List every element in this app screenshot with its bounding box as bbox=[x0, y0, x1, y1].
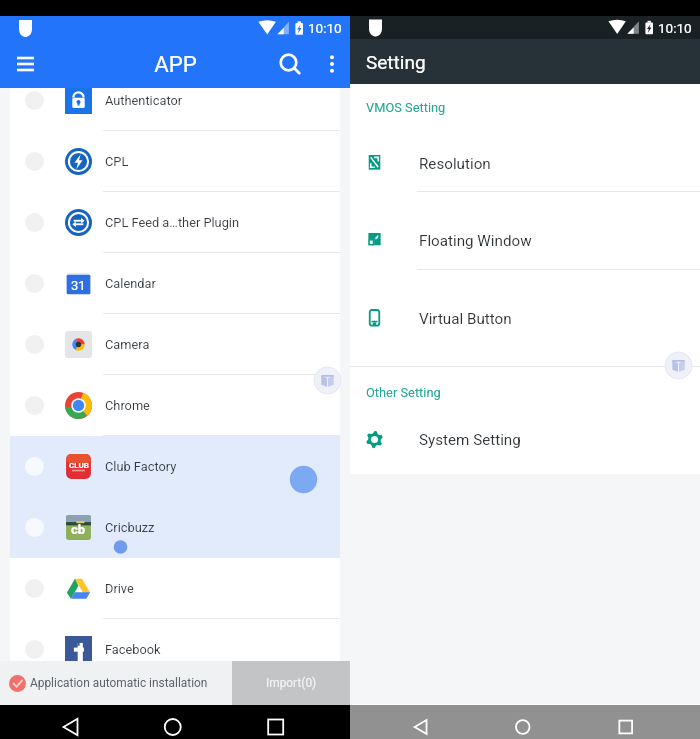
staticText: Import(0) bbox=[266, 676, 317, 690]
button[interactable]: Resolution bbox=[350, 125, 700, 202]
button[interactable]: Drive bbox=[10, 558, 340, 619]
staticText: APP bbox=[154, 51, 197, 77]
staticText: cb bbox=[71, 522, 86, 537]
button[interactable]: Facebook bbox=[10, 619, 340, 661]
staticText: Application automatic installation bbox=[30, 676, 208, 690]
button[interactable]: Search bbox=[267, 42, 311, 86]
staticText: 10:10 bbox=[308, 20, 342, 36]
button[interactable]: Home bbox=[116, 705, 233, 739]
staticText: Club Factory bbox=[105, 459, 177, 474]
button[interactable]: Import(0) bbox=[232, 661, 350, 705]
button[interactable]: CPL Feed a…ther Plugin bbox=[10, 192, 340, 253]
staticText: Virtual Button bbox=[419, 310, 512, 328]
staticText: Facebook bbox=[105, 642, 161, 657]
staticText: Camera bbox=[105, 337, 150, 352]
staticText: CPL Feed a…ther Plugin bbox=[105, 215, 240, 230]
button[interactable]: 31 bbox=[10, 253, 340, 314]
button[interactable]: More options bbox=[310, 44, 350, 84]
staticText: Authenticator bbox=[105, 93, 183, 108]
button[interactable]: Home bbox=[466, 705, 583, 739]
staticText: Resolution bbox=[419, 155, 491, 173]
staticText: CPL bbox=[105, 154, 129, 169]
button[interactable]: CPL bbox=[10, 131, 340, 192]
staticText: Cricbuzz bbox=[105, 520, 155, 535]
staticText: Chrome bbox=[105, 398, 150, 413]
staticText: System Setting bbox=[419, 431, 521, 449]
button[interactable]: cb bbox=[10, 497, 340, 558]
button[interactable]: Back bbox=[0, 705, 116, 739]
button[interactable]: System Setting bbox=[350, 401, 700, 478]
staticText: Other Setting bbox=[366, 385, 441, 400]
button[interactable]: Back bbox=[350, 705, 466, 739]
staticText: VMOS Setting bbox=[366, 100, 446, 115]
button[interactable]: Chrome bbox=[10, 375, 340, 436]
staticText: CLUB bbox=[69, 461, 89, 470]
button[interactable]: Recent apps bbox=[583, 705, 700, 739]
staticText: 10:10 bbox=[658, 20, 692, 36]
staticText: Drive bbox=[105, 581, 134, 596]
button[interactable]: Camera bbox=[10, 314, 340, 375]
staticText: Setting bbox=[366, 51, 426, 73]
button[interactable]: Authenticator bbox=[10, 88, 340, 131]
button[interactable]: Virtual Button bbox=[350, 280, 700, 357]
button[interactable]: Recent apps bbox=[233, 705, 350, 739]
staticText: 31 bbox=[71, 278, 86, 293]
button[interactable]: Open navigation menu bbox=[0, 40, 48, 88]
staticText: Calendar bbox=[105, 276, 156, 291]
button[interactable]: Application automatic installation bbox=[0, 661, 232, 705]
staticText: Floating Window bbox=[419, 232, 532, 250]
button[interactable]: CLUB bbox=[10, 436, 340, 497]
button[interactable]: Floating Window bbox=[350, 202, 700, 279]
